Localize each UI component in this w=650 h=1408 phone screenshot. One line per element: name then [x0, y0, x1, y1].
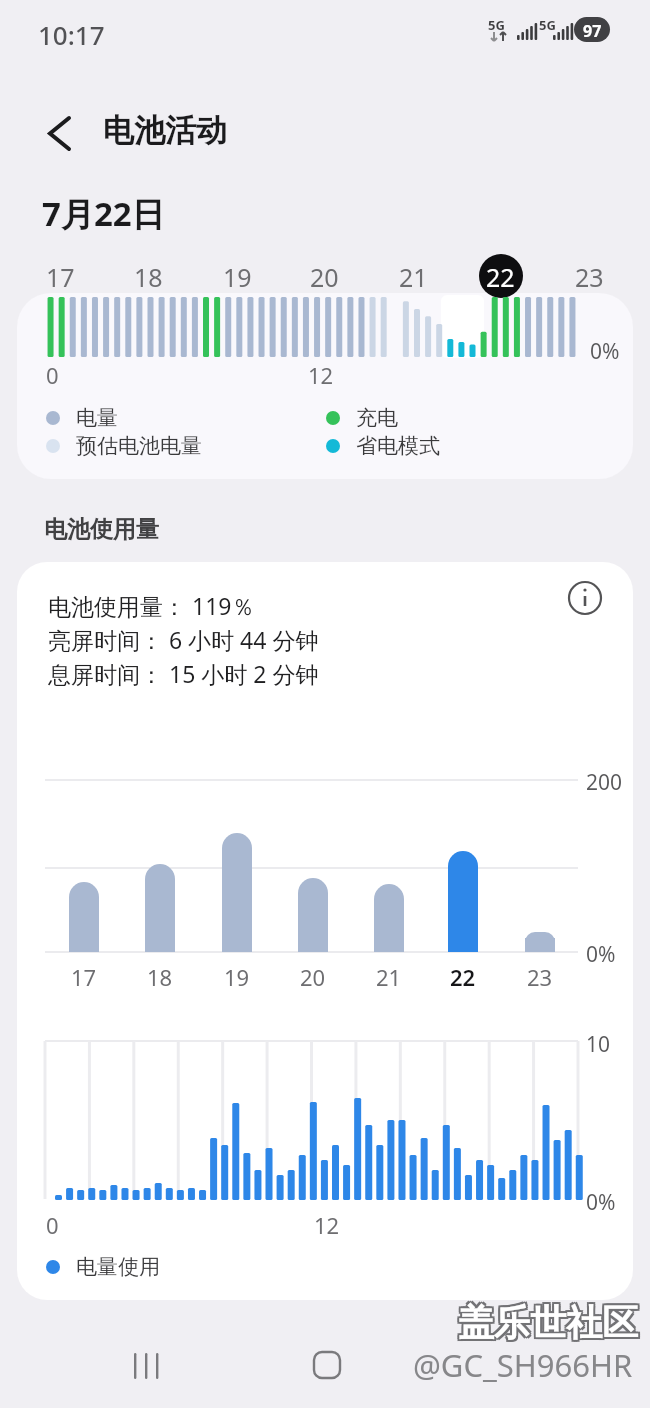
staticText: 盖乐世社区 [458, 1298, 638, 1343]
staticText: 5G [539, 16, 556, 34]
button[interactable]: 21 [383, 256, 443, 298]
button[interactable] [296, 1334, 356, 1394]
staticText: 10 [586, 1030, 611, 1059]
staticText: 0 [46, 1210, 59, 1240]
staticText: 盖乐世社区 [460, 1300, 640, 1345]
staticText: 电池活动 [103, 111, 227, 150]
staticText: 亮屏时间： 6 小时 44 分钟 [48, 624, 319, 655]
staticText: 0% [586, 1188, 616, 1217]
staticText: 盖乐世社区 [456, 1300, 636, 1345]
staticText: 23 [527, 962, 553, 992]
staticText: 20 [310, 260, 339, 294]
staticText: 18 [147, 962, 173, 992]
staticText: 电池使用量： 119％ [48, 590, 255, 621]
button[interactable]: 23 [559, 256, 619, 298]
button[interactable]: 17 [30, 256, 90, 298]
staticText: 10:17 [38, 17, 105, 52]
staticText: 盖乐世社区 [460, 1302, 640, 1347]
staticText: 预估电池电量 [76, 433, 202, 459]
staticText: 7月22日 [42, 191, 165, 236]
button[interactable]: 19 [207, 256, 267, 298]
staticText: 5G [488, 16, 505, 34]
staticText: 12 [308, 360, 334, 390]
staticText: 19 [224, 962, 250, 992]
button[interactable]: 22 [470, 256, 530, 298]
staticText: 12 [314, 1210, 340, 1240]
staticText: 充电 [356, 405, 398, 431]
staticText: 200 [586, 768, 623, 797]
staticText: 18 [134, 260, 163, 294]
staticText: 21 [399, 260, 428, 294]
staticText: 20 [300, 962, 326, 992]
staticText: 盖乐世社区 [458, 1300, 638, 1345]
staticText: 21 [376, 962, 402, 992]
button[interactable]: 20 [294, 256, 354, 298]
staticText: 盖乐世社区 [458, 1302, 638, 1347]
staticText: 电量 [76, 405, 118, 431]
staticText: 0% [590, 337, 620, 366]
staticText: 23 [575, 260, 604, 294]
staticText: 17 [71, 962, 97, 992]
staticText: 19 [223, 260, 252, 294]
staticText: 电量使用 [76, 1254, 160, 1280]
staticText: 0 [46, 360, 59, 390]
staticText: 息屏时间： 15 小时 2 分钟 [48, 658, 319, 689]
staticText: 省电模式 [356, 433, 440, 459]
staticText: 盖乐世社区 [460, 1298, 640, 1343]
staticText: 97 [583, 20, 602, 42]
staticText: 盖乐世社区 [456, 1302, 636, 1347]
button[interactable] [117, 1334, 177, 1394]
button[interactable]: 18 [118, 256, 178, 298]
staticText: 22 [450, 962, 476, 992]
staticText: 盖乐世社区 [456, 1298, 636, 1343]
staticText: @GC_SH966HR [413, 1344, 633, 1386]
staticText: 0% [586, 940, 616, 969]
button[interactable] [40, 110, 86, 156]
staticText: 电池使用量 [44, 515, 159, 544]
staticText: 17 [46, 260, 75, 294]
staticText: 22 [486, 260, 515, 294]
button[interactable] [563, 576, 607, 620]
